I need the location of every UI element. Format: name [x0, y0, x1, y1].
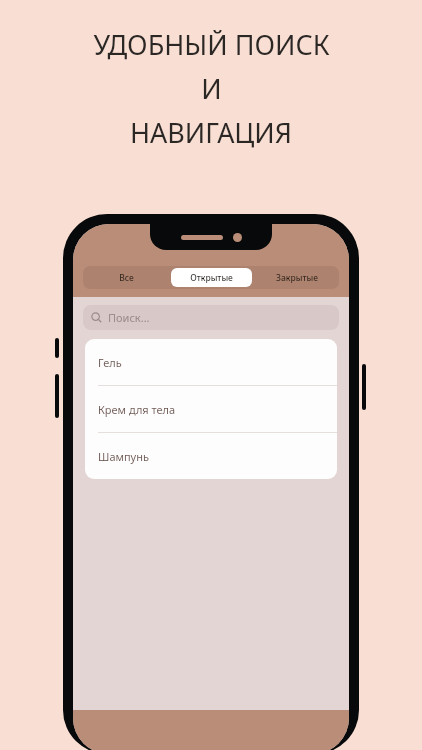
staticText: НАВИГАЦИЯ — [130, 114, 292, 151]
button[interactable]: Крем для тела — [85, 386, 337, 432]
staticText: Открытые — [190, 272, 233, 284]
staticText: И — [201, 70, 222, 107]
staticText: Крем для тела — [98, 402, 176, 417]
button[interactable]: Все — [85, 268, 167, 287]
button[interactable]: Шампунь — [85, 433, 337, 479]
staticText: Все — [119, 272, 134, 284]
staticText: УДОБНЫЙ ПОИСК — [93, 26, 330, 63]
button[interactable]: Закрытые — [256, 268, 337, 287]
staticText: Гель — [98, 355, 122, 370]
staticText: Закрытые — [276, 272, 318, 284]
button[interactable]: Гель — [85, 339, 337, 385]
button[interactable]: Открытые — [171, 268, 252, 287]
button[interactable]: Search — [83, 305, 339, 330]
staticText: Поиск... — [108, 310, 150, 325]
staticText: Шампунь — [98, 449, 149, 464]
other: Search — [91, 312, 102, 323]
